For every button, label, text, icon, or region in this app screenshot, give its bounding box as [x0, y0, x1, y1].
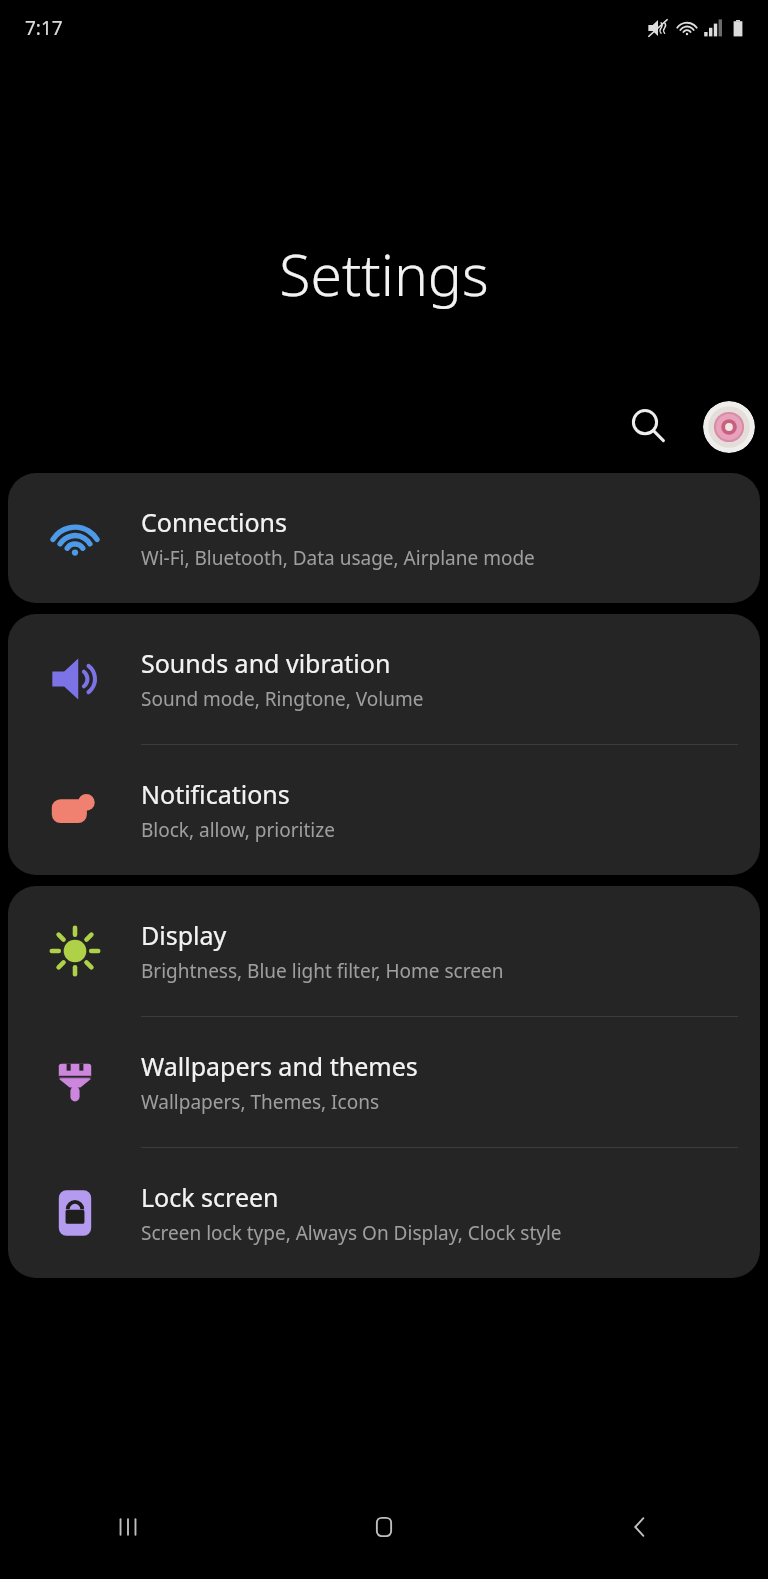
staticText: Wallpapers, Themes, Icons: [141, 1089, 380, 1115]
staticText: Brightness, Blue light filter, Home scre…: [141, 958, 504, 984]
button[interactable]: Display: [8, 886, 760, 1016]
staticText: Settings: [0, 235, 768, 313]
staticText: Display: [141, 918, 227, 952]
staticText: Notifications: [141, 777, 290, 811]
button[interactable]: Search: [623, 401, 675, 453]
staticText: Connections: [141, 505, 287, 539]
button[interactable]: Recents: [0, 1474, 256, 1579]
staticText: Lock screen: [141, 1180, 279, 1214]
button[interactable]: Wallpapers and themes: [8, 1017, 760, 1147]
staticText: 7:17: [25, 15, 63, 41]
staticText: Wallpapers and themes: [141, 1049, 418, 1083]
button[interactable]: Notifications: [8, 745, 760, 875]
button[interactable]: Connections: [8, 473, 760, 603]
staticText: Block, allow, prioritize: [141, 817, 335, 843]
staticText: Sound mode, Ringtone, Volume: [141, 686, 424, 712]
button[interactable]: Sounds and vibration: [8, 614, 760, 744]
staticText: Screen lock type, Always On Display, Clo…: [141, 1220, 562, 1246]
button[interactable]: Back: [512, 1474, 768, 1579]
button[interactable]: Lock screen: [8, 1148, 760, 1278]
staticText: Sounds and vibration: [141, 646, 391, 680]
button[interactable]: Home: [256, 1474, 512, 1579]
staticText: Wi-Fi, Bluetooth, Data usage, Airplane m…: [141, 545, 535, 571]
button[interactable]: Profile: [703, 401, 755, 453]
